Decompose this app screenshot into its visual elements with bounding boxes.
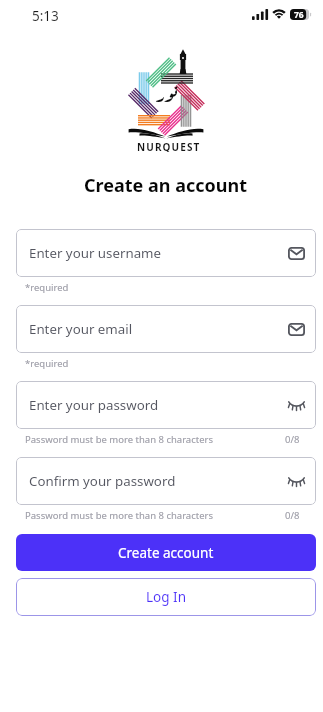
other: Email <box>288 247 305 260</box>
button[interactable]: Confirm your password <box>16 457 316 505</box>
staticText: *required <box>25 281 300 294</box>
staticText: Enter your username <box>29 244 288 262</box>
staticText: *required <box>25 357 300 370</box>
staticText: 0/8 <box>285 433 300 446</box>
button[interactable]: Enter your password <box>16 381 316 429</box>
button[interactable]: Enter your username <box>16 229 316 277</box>
staticText: Password must be more than 8 characters <box>25 509 285 522</box>
other: Email <box>288 323 305 336</box>
staticText: NURQUEST <box>137 140 201 152</box>
other: Show password <box>288 401 305 410</box>
staticText: 76 <box>294 9 304 20</box>
button[interactable]: Enter your email <box>16 305 316 353</box>
staticText: 0/8 <box>285 509 300 522</box>
staticText: Enter your password <box>29 396 288 414</box>
staticText: Create account <box>118 544 214 562</box>
button[interactable]: Log In <box>16 578 316 616</box>
button[interactable]: Create account <box>16 534 316 571</box>
staticText: Enter your email <box>29 320 288 338</box>
staticText: Log In <box>146 588 186 606</box>
staticText: Confirm your password <box>29 472 288 490</box>
staticText: Password must be more than 8 characters <box>25 433 285 446</box>
staticText: Create an account <box>84 173 247 198</box>
staticText: 5:13 <box>32 7 59 25</box>
staticText: نور <box>156 80 178 106</box>
other: Show password <box>288 477 305 486</box>
